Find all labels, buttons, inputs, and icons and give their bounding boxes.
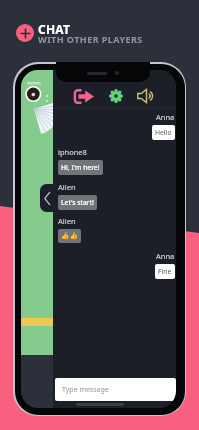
staticText: Type message bbox=[62, 385, 109, 395]
staticText: Alien bbox=[58, 216, 76, 226]
button[interactable]: Settings bbox=[104, 84, 127, 107]
staticText: iphone8 bbox=[58, 147, 87, 157]
staticText: Fine bbox=[158, 267, 172, 276]
staticText: Hello bbox=[155, 128, 172, 137]
staticText: Hi, I'm here! bbox=[61, 163, 100, 172]
staticText: Let's start! bbox=[61, 198, 94, 207]
button[interactable]: Type message bbox=[55, 378, 176, 401]
button[interactable]: Add bbox=[16, 24, 34, 42]
button[interactable]: Sound bbox=[135, 84, 158, 107]
staticText: CHAT bbox=[38, 21, 71, 37]
staticText: 👍👍 bbox=[61, 232, 78, 240]
button[interactable]: Collapse chat bbox=[40, 184, 53, 212]
staticText: Anna bbox=[156, 112, 175, 122]
staticText: WITH OTHER PLAYERS bbox=[38, 33, 143, 45]
button[interactable]: Leave chat bbox=[72, 85, 95, 108]
staticText: Anna bbox=[156, 251, 175, 261]
staticText: Alien bbox=[58, 182, 76, 192]
